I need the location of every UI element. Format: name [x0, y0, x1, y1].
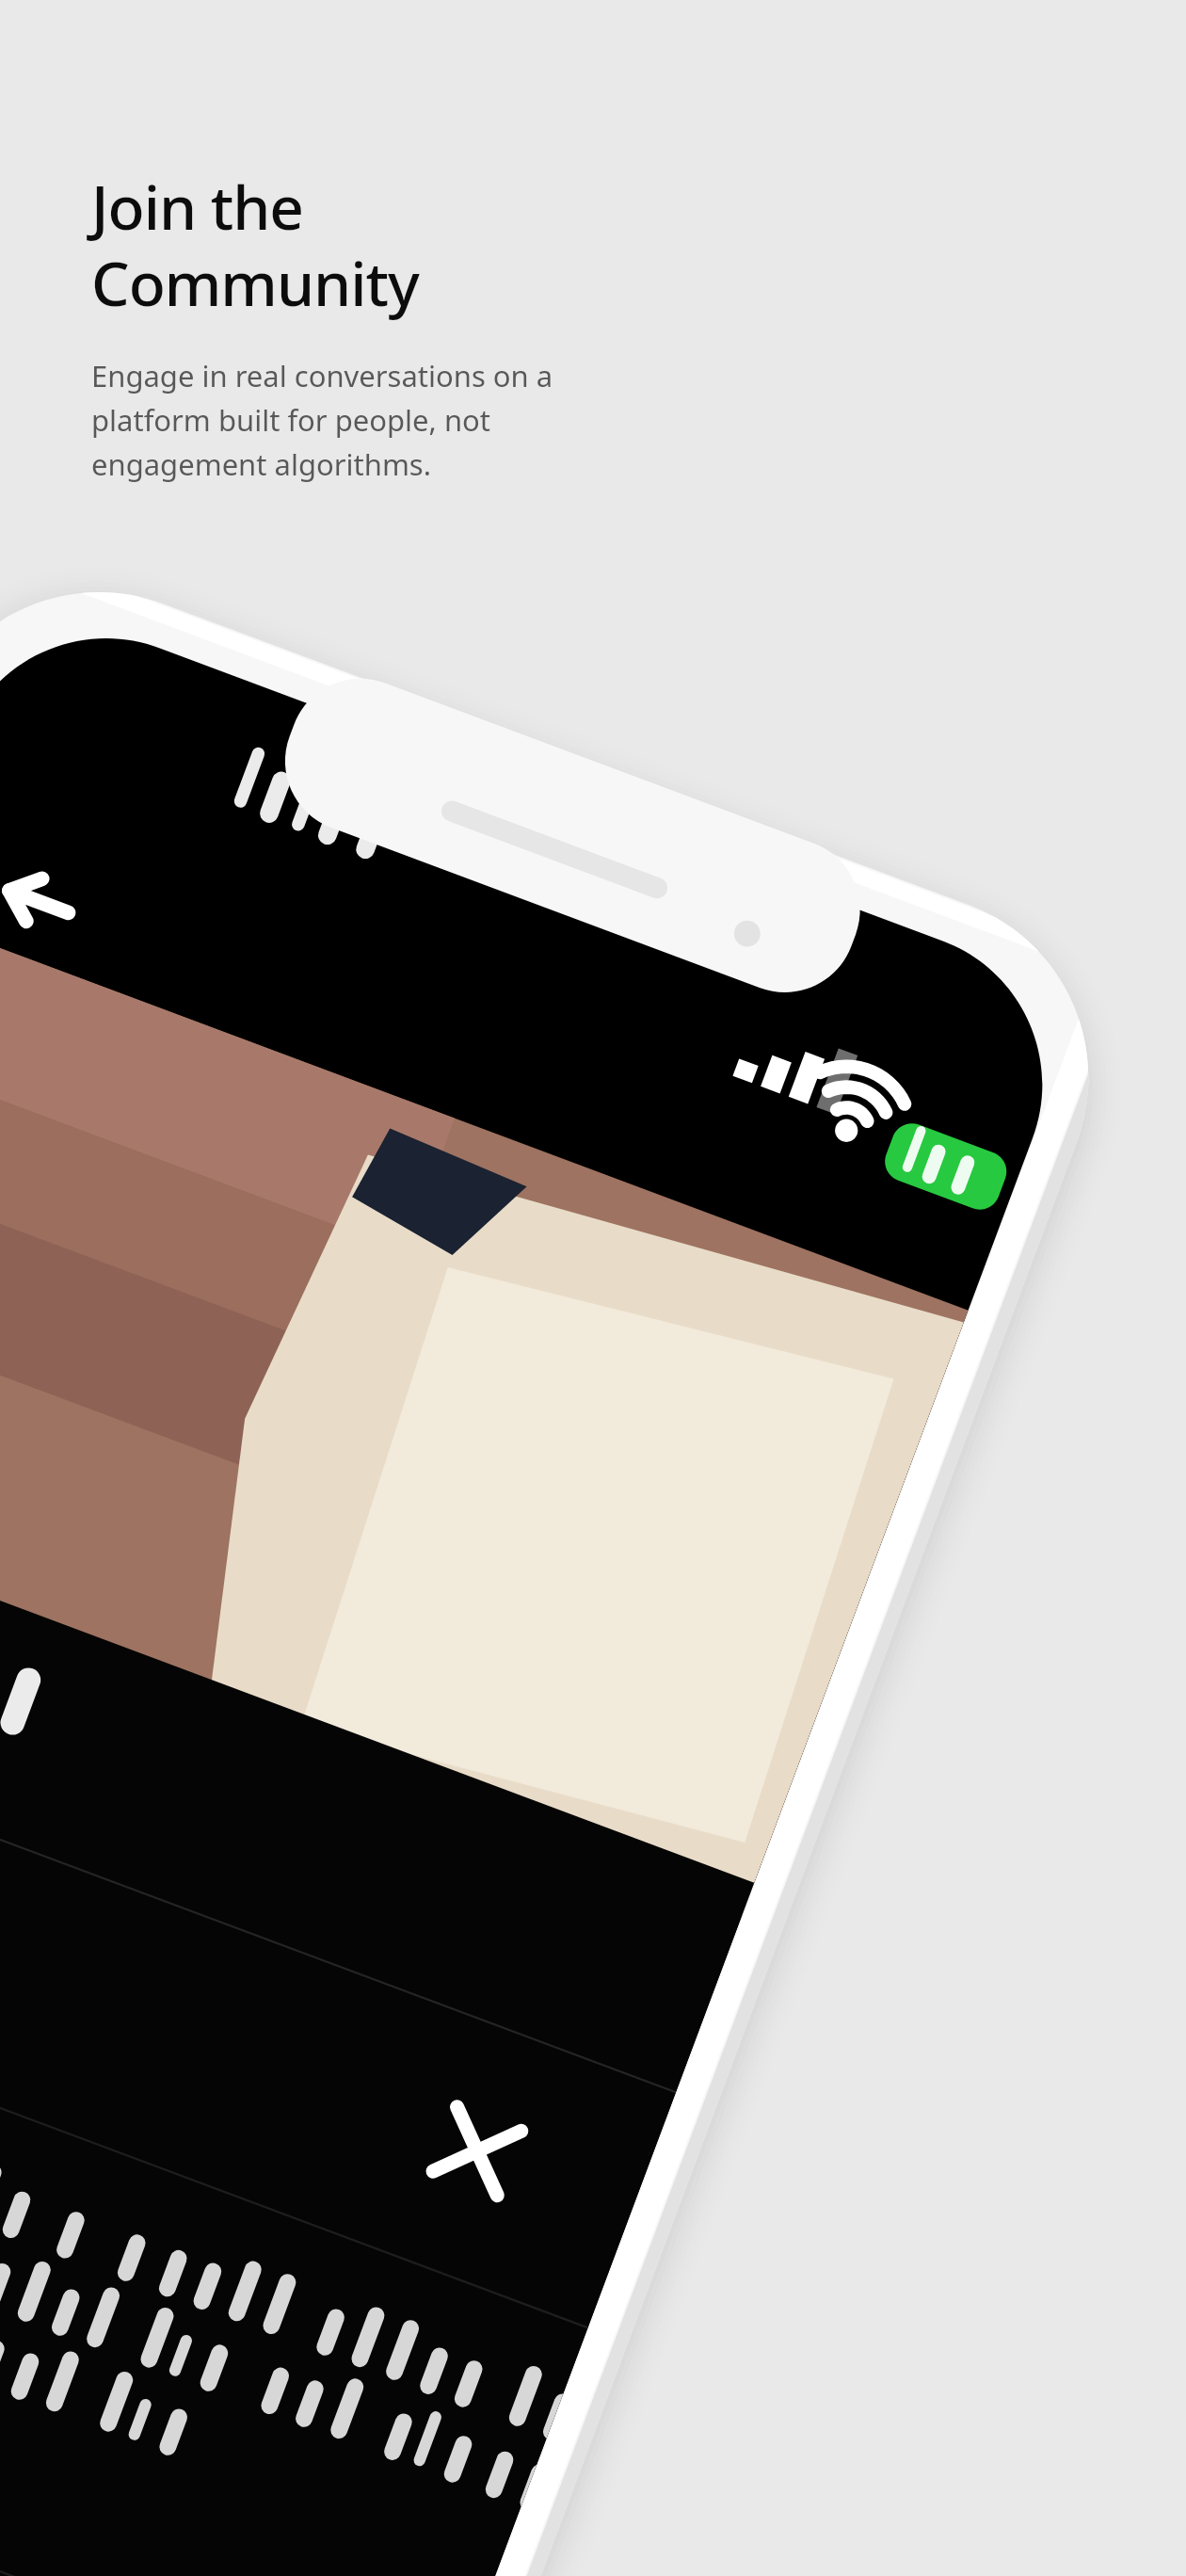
button[interactable]: App preview on phone	[0, 0, 1186, 2576]
staticText: Engage in real conversations on a platfo…	[91, 356, 553, 484]
staticText: Join the Community	[91, 166, 419, 324]
